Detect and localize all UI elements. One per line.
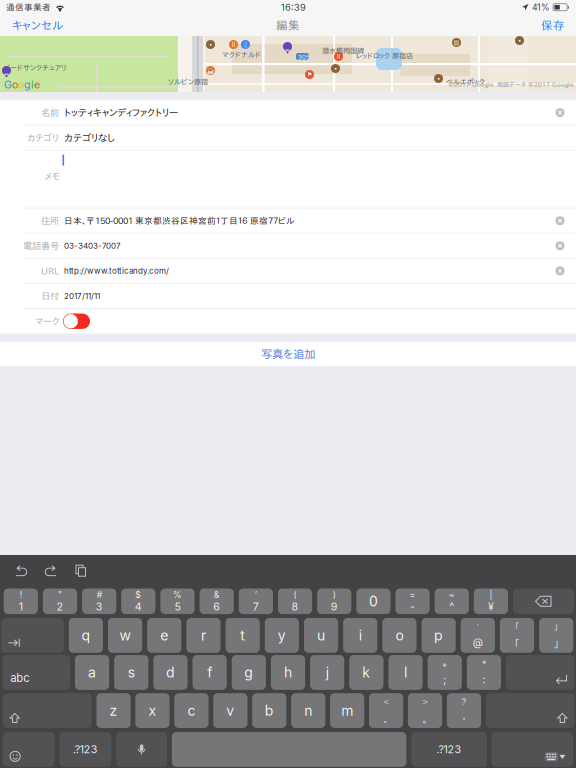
staticText: ^ xyxy=(449,600,454,613)
staticText: # xyxy=(97,590,102,600)
staticText: m xyxy=(341,702,353,719)
button[interactable]: 消去 xyxy=(549,102,571,124)
staticText: ? xyxy=(461,697,466,706)
button[interactable]: b xyxy=(252,693,286,728)
button[interactable]: o xyxy=(382,618,416,653)
button[interactable]: n xyxy=(291,693,325,728)
button[interactable]: c xyxy=(174,693,208,728)
button[interactable]: r xyxy=(186,618,221,653)
staticText: Ⅱ xyxy=(232,41,235,48)
button[interactable]: & xyxy=(200,588,234,614)
staticText: i xyxy=(359,627,362,644)
button[interactable]: 保存 xyxy=(539,15,567,36)
button[interactable]: e xyxy=(147,618,181,653)
button[interactable]: < xyxy=(369,693,403,728)
staticText: o xyxy=(18,78,24,91)
button[interactable]: ` xyxy=(461,618,495,653)
button[interactable]: 音声入力 xyxy=(116,732,167,767)
staticText: 編集 xyxy=(276,19,300,31)
button[interactable]: 消去 xyxy=(549,260,571,282)
staticText: g xyxy=(244,664,253,681)
button[interactable]: タブ xyxy=(1,618,64,653)
button[interactable]: キーボードを閉じる xyxy=(492,732,573,767)
button[interactable]: # xyxy=(82,588,116,614)
button[interactable]: やり直す xyxy=(36,559,66,583)
button[interactable]: w xyxy=(108,618,142,653)
button[interactable]: d xyxy=(153,655,188,690)
staticText: .?123 xyxy=(73,743,98,756)
button[interactable]: t xyxy=(226,618,260,653)
staticText: g xyxy=(24,78,31,91)
button[interactable]: m xyxy=(330,693,364,728)
button[interactable]: s xyxy=(114,655,148,690)
staticText: ⚑ xyxy=(307,71,312,78)
button[interactable]: キャンセル xyxy=(10,15,65,36)
button[interactable]: | xyxy=(474,588,508,614)
button[interactable]: k xyxy=(349,655,383,690)
staticText: ・ xyxy=(461,714,466,724)
staticText: ソルビン原宿 xyxy=(168,78,208,85)
button[interactable]: h xyxy=(271,655,305,690)
button[interactable]: ” xyxy=(43,588,77,614)
button[interactable]: 0 xyxy=(356,588,390,614)
button[interactable]: ’ xyxy=(239,588,273,614)
staticText: 通信事業者 xyxy=(6,3,51,12)
button[interactable]: = xyxy=(395,588,430,614)
button[interactable]: y xyxy=(265,618,299,653)
staticText: l xyxy=(404,664,407,681)
button[interactable]: 元に戻す xyxy=(6,559,36,583)
staticText: x xyxy=(148,702,156,719)
staticText: v xyxy=(226,702,234,719)
button[interactable]: 削除 xyxy=(513,588,574,614)
button[interactable]: 「 xyxy=(500,618,534,653)
button[interactable]: .?123 xyxy=(411,732,487,767)
staticText: 。 xyxy=(422,714,427,724)
button[interactable]: 」 xyxy=(539,618,573,653)
button[interactable]: ペースト xyxy=(66,559,96,583)
button[interactable]: 改行 xyxy=(506,655,574,690)
button[interactable]: シフト xyxy=(486,693,574,728)
button[interactable]: シフト xyxy=(3,693,92,728)
button[interactable]: l xyxy=(388,655,423,690)
button[interactable]: 消去 xyxy=(549,235,571,257)
button[interactable]: マーク xyxy=(63,313,90,329)
button[interactable]: + xyxy=(428,655,462,690)
button[interactable]: f xyxy=(192,655,227,690)
staticText: ©2017 Google 地図データ ©2017 Google xyxy=(448,81,573,87)
button[interactable]: .?123 xyxy=(59,732,111,767)
button[interactable]: v xyxy=(213,693,247,728)
staticText: • xyxy=(209,41,212,48)
button[interactable]: 消去 xyxy=(549,210,571,232)
button[interactable]: i xyxy=(343,618,377,653)
staticText: ¥ xyxy=(488,600,494,613)
button[interactable]: g xyxy=(232,655,266,690)
button[interactable]: ~ xyxy=(435,588,469,614)
button[interactable]: x xyxy=(135,693,170,728)
staticText: マーク xyxy=(35,317,59,326)
button[interactable]: ) xyxy=(317,588,351,614)
button[interactable]: 絵文字 xyxy=(3,732,55,767)
staticText: r xyxy=(201,627,206,644)
button[interactable]: 写真を追加 xyxy=(0,342,576,366)
button[interactable]: ( xyxy=(278,588,312,614)
button[interactable]: $ xyxy=(121,588,155,614)
button[interactable]: % xyxy=(160,588,195,614)
button[interactable]: a xyxy=(75,655,109,690)
button[interactable]: z xyxy=(96,693,131,728)
button[interactable]: abc xyxy=(2,655,70,690)
button[interactable]: ? xyxy=(447,693,481,728)
button[interactable]: u xyxy=(304,618,338,653)
staticText: 2017/11/11 xyxy=(64,291,100,301)
button[interactable]: * xyxy=(467,655,501,690)
button[interactable]: p xyxy=(421,618,456,653)
button[interactable]: j xyxy=(310,655,344,690)
button[interactable]: ! xyxy=(4,588,38,614)
staticText: マクドナルド xyxy=(222,51,261,58)
button[interactable]: > xyxy=(408,693,442,728)
staticText: ｢ xyxy=(514,639,519,649)
staticText: ベルエポック xyxy=(446,78,485,85)
button[interactable]: q xyxy=(69,618,103,653)
staticText: c xyxy=(187,702,195,719)
staticText: ｣ xyxy=(554,639,559,649)
